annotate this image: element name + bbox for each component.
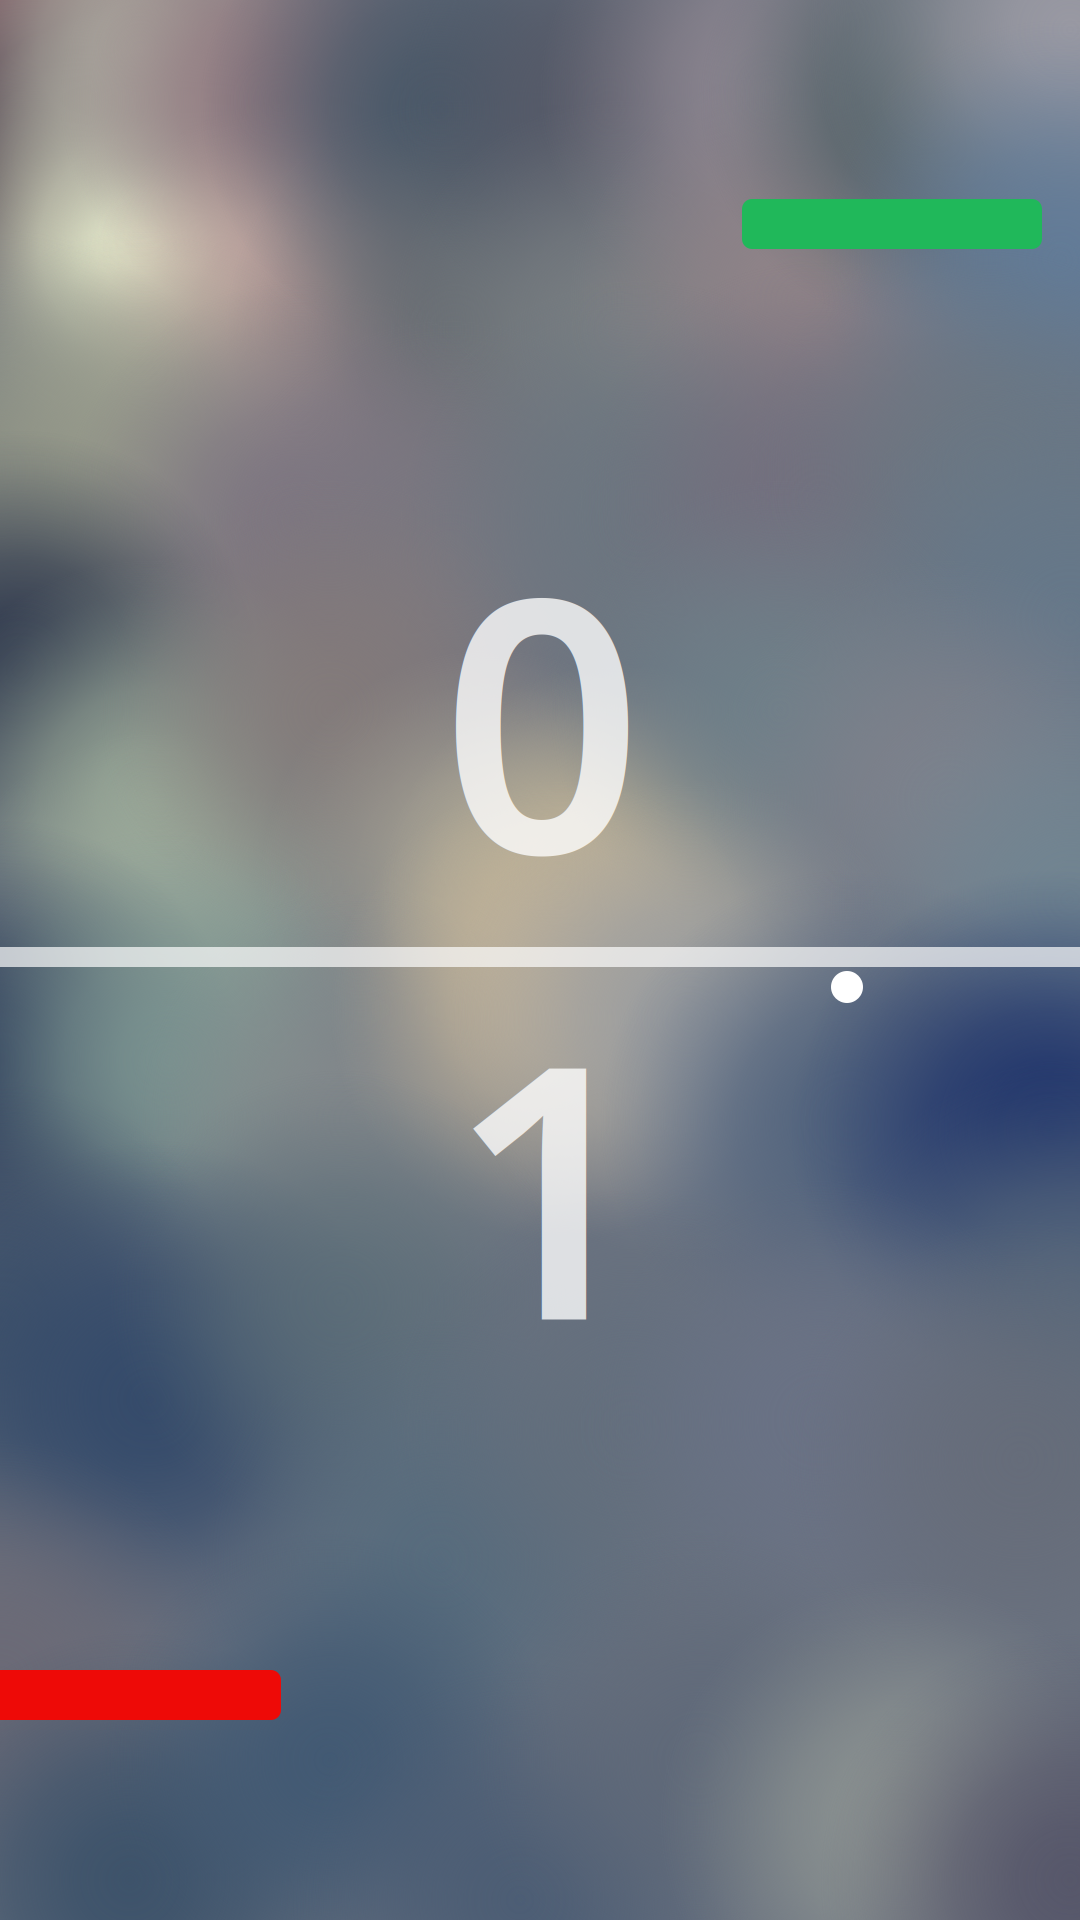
staticText: 1	[448, 949, 649, 1417]
staticText: 0	[441, 482, 642, 950]
